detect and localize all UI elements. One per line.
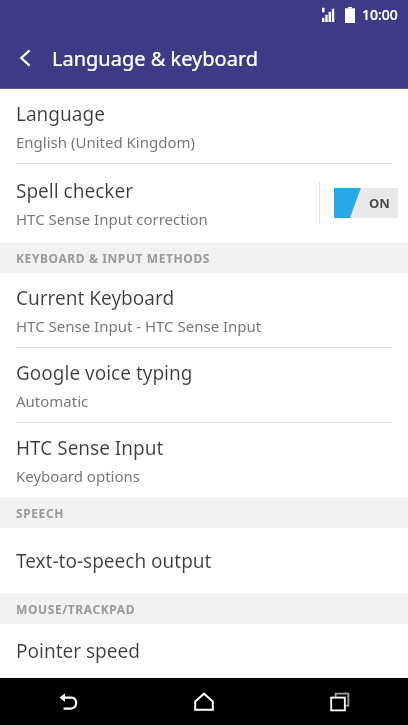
staticText: KEYBOARD & INPUT METHODS (16, 250, 211, 266)
staticText: Automatic (16, 391, 89, 411)
button[interactable]: Text-to-speech output (0, 528, 408, 593)
staticText: MOUSE/TRACKPAD (16, 601, 136, 617)
button[interactable]: Recent apps (272, 678, 408, 725)
button[interactable]: Back (0, 678, 136, 725)
staticText: Google voice typing (16, 360, 193, 386)
staticText: Language (16, 101, 105, 127)
staticText: 10:00 (362, 5, 398, 24)
staticText: Language & keyboard (52, 45, 259, 72)
button[interactable]: Spell checker (0, 164, 408, 242)
staticText: HTC Sense Input correction (16, 209, 208, 229)
staticText: Text-to-speech output (16, 548, 212, 574)
staticText: Spell checker (16, 178, 133, 204)
button[interactable]: Pointer speed (0, 624, 408, 678)
button[interactable]: Home (136, 678, 272, 725)
staticText: HTC Sense Input (16, 435, 164, 461)
other: Spell checker toggle, On (334, 188, 398, 218)
staticText: SPEECH (16, 505, 64, 521)
button[interactable]: HTC Sense Input (0, 423, 408, 497)
button[interactable]: Back (0, 32, 52, 84)
button[interactable]: Current Keyboard (0, 273, 408, 347)
staticText: Current Keyboard (16, 285, 175, 311)
staticText: HTC Sense Input - HTC Sense Input (16, 316, 262, 336)
staticText: English (United Kingdom) (16, 132, 196, 152)
staticText: Keyboard options (16, 466, 140, 486)
staticText: ON (369, 194, 390, 212)
staticText: Pointer speed (16, 638, 140, 664)
button[interactable]: Language (0, 89, 408, 163)
button[interactable]: Google voice typing (0, 348, 408, 422)
